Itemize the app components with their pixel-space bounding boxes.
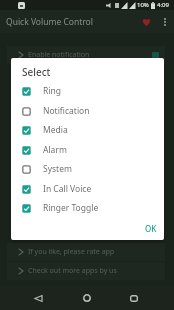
staticText: Enable notification <box>28 50 90 60</box>
staticText: 10% <box>137 1 149 9</box>
button[interactable]: System <box>11 159 164 179</box>
button[interactable]: Recents <box>124 288 144 308</box>
staticText: If you like, please rate app <box>28 247 115 257</box>
staticText: Media <box>43 124 68 136</box>
staticText: Ring <box>43 85 61 97</box>
button[interactable]: Enable notification <box>7 46 165 64</box>
button[interactable]: Home <box>77 288 97 308</box>
staticText: Check out more apps by us <box>28 266 117 276</box>
button[interactable]: Back <box>28 288 48 308</box>
button[interactable]: Ring <box>11 81 164 101</box>
staticText: Ringer Toggle <box>43 202 99 214</box>
button[interactable]: In Call Voice <box>11 179 164 199</box>
staticText: 4:09 <box>157 1 169 9</box>
staticText: OK <box>145 223 157 234</box>
button[interactable]: If you like, please rate app <box>7 243 165 261</box>
button[interactable]: Media <box>11 120 164 140</box>
staticText: System <box>43 163 72 175</box>
button[interactable]: Notification <box>11 101 164 121</box>
staticText: Alarm <box>43 144 67 156</box>
button[interactable]: Check out more apps by us <box>7 262 165 280</box>
staticText: Quick Volume Control <box>6 16 93 28</box>
button[interactable]: Ringer Toggle <box>11 198 164 218</box>
staticText: Select <box>22 65 51 79</box>
button[interactable]: More options <box>156 13 174 31</box>
button[interactable]: OK <box>139 219 163 238</box>
staticText: In Call Voice <box>43 183 92 195</box>
button[interactable]: Favorite <box>136 12 156 32</box>
staticText: Notification <box>43 105 90 117</box>
button[interactable]: Alarm <box>11 140 164 160</box>
